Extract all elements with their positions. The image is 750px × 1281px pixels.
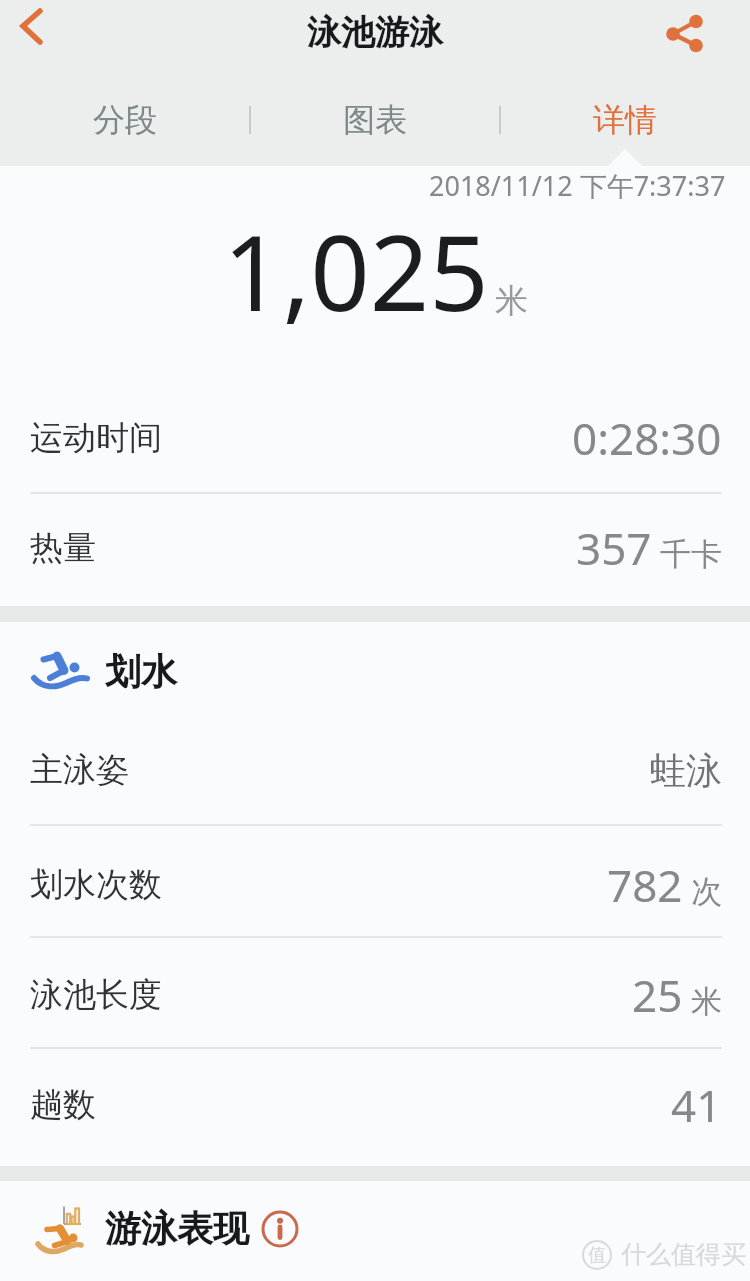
staticText: 热量 [30, 527, 96, 569]
button[interactable] [261, 1210, 299, 1248]
button[interactable] [654, 6, 710, 62]
staticText: 千卡 [660, 535, 722, 574]
staticText: 蛙泳 [650, 748, 722, 793]
staticText: 0:28:30 [572, 408, 722, 468]
staticText: 趟数 [30, 1084, 96, 1126]
staticText: 主泳姿 [30, 749, 129, 791]
staticText: 值 [588, 1244, 606, 1267]
button[interactable]: 分段 [0, 94, 250, 146]
staticText: 划水 [105, 649, 177, 694]
button[interactable] [8, 0, 56, 56]
staticText: 图表 [343, 100, 407, 140]
staticText: 782 [607, 855, 683, 915]
staticText: 泳池长度 [30, 974, 162, 1016]
staticText: 米 [691, 982, 722, 1021]
staticText: 详情 [593, 100, 657, 140]
staticText: 2018/11/12 下午7:37:37 [429, 167, 726, 199]
staticText: 41 [671, 1075, 722, 1135]
button[interactable]: 划水次数 [0, 851, 750, 919]
staticText: 分段 [93, 100, 157, 140]
staticText: 1,025 [223, 200, 489, 342]
button[interactable]: 运动时间 [0, 404, 750, 472]
staticText: 划水次数 [30, 864, 162, 906]
button[interactable]: 图表 [250, 94, 500, 146]
staticText: 游泳表现 [105, 1206, 249, 1251]
staticText: 运动时间 [30, 417, 162, 459]
staticText: 泳池游泳 [307, 11, 443, 54]
staticText: 357 [576, 518, 652, 578]
staticText: 米 [495, 280, 528, 322]
button[interactable]: 主泳姿 [0, 736, 750, 804]
staticText: 次 [691, 872, 722, 911]
button[interactable]: 趟数 [0, 1071, 750, 1139]
staticText: 25 [632, 965, 683, 1025]
button[interactable]: 热量 [0, 514, 750, 582]
button[interactable]: 详情 [500, 94, 750, 146]
button[interactable]: 泳池长度 [0, 961, 750, 1029]
staticText: 什么值得买 [621, 1239, 746, 1270]
